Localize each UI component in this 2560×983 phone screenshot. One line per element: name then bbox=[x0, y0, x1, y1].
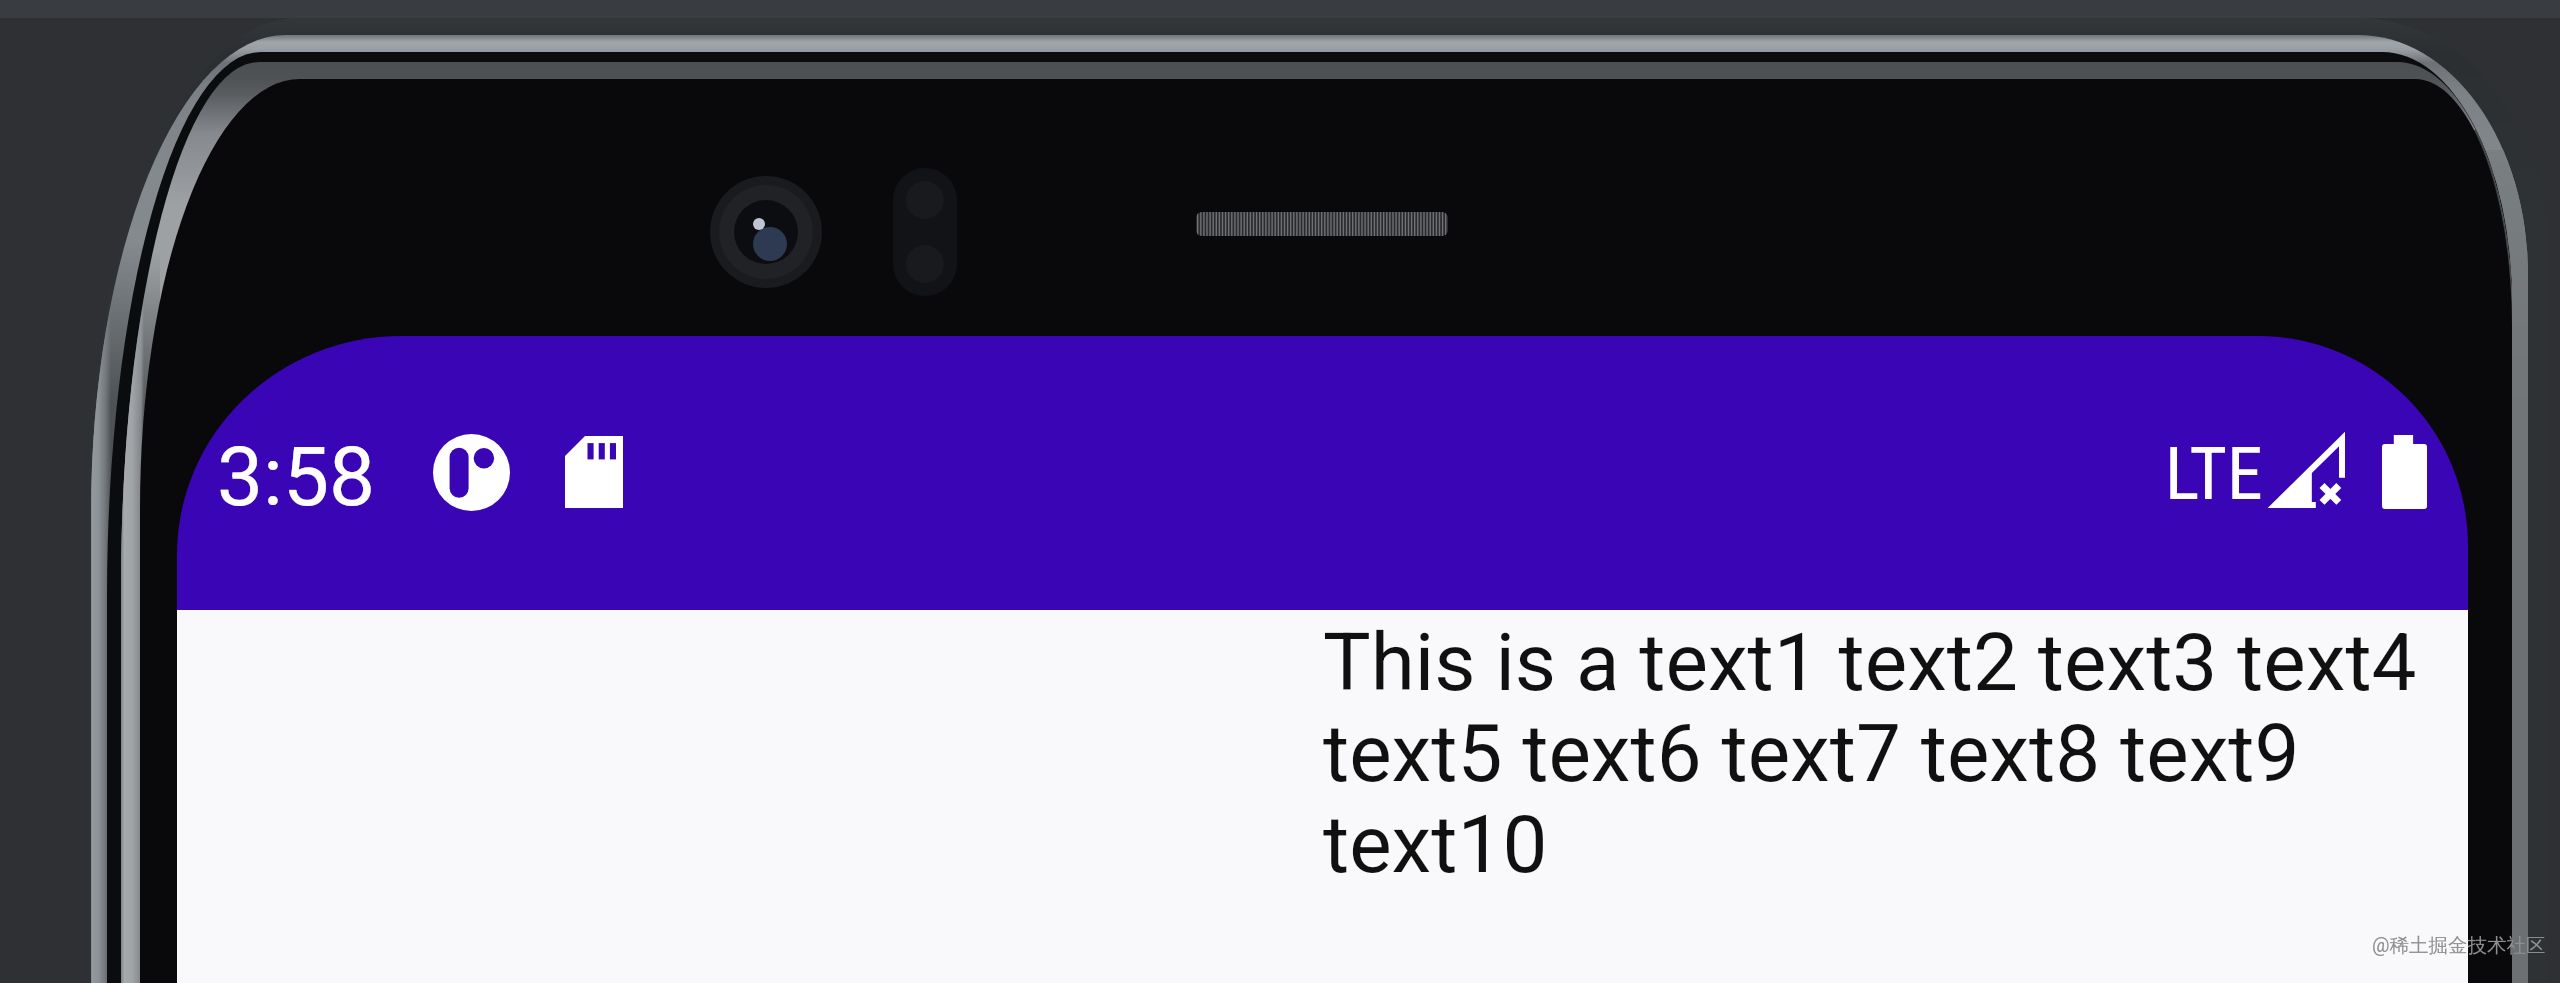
button[interactable]: LTE bbox=[2160, 425, 2264, 517]
staticText: 3:58 bbox=[217, 429, 376, 525]
staticText: @稀土掘金技术社区 bbox=[2372, 933, 2546, 958]
button[interactable]: This is a text1 text2 text3 text4 text5 … bbox=[1323, 616, 2423, 891]
staticText: LTE bbox=[2165, 432, 2263, 516]
button[interactable]: No signal bbox=[2272, 436, 2345, 508]
button[interactable]: Battery bbox=[2382, 435, 2427, 509]
button[interactable]: SD card bbox=[565, 436, 623, 508]
button[interactable]: Do not disturb bbox=[433, 434, 510, 511]
button[interactable]: 3:58 bbox=[208, 420, 376, 516]
